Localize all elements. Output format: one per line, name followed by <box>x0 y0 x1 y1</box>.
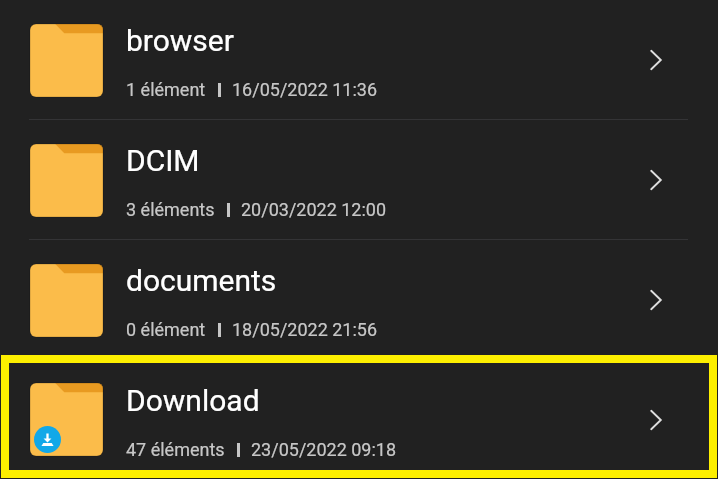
staticText: 3 éléments <box>126 199 215 220</box>
button[interactable]: browser <box>0 0 718 120</box>
staticText: documents <box>126 263 277 298</box>
staticText: Download <box>126 383 260 418</box>
staticText: 20/03/2022 12:00 <box>241 199 387 220</box>
staticText: 18/05/2022 21:56 <box>232 319 378 340</box>
button[interactable]: Open documents <box>639 283 673 317</box>
staticText: 1 élément <box>126 79 206 100</box>
staticText: browser <box>126 23 234 58</box>
button[interactable]: Download <box>0 360 718 479</box>
staticText: 47 éléments <box>126 439 225 460</box>
button[interactable]: documents <box>0 240 718 360</box>
staticText: DCIM <box>126 143 200 178</box>
staticText: 0 élément <box>126 319 206 340</box>
staticText: 16/05/2022 11:36 <box>232 79 378 100</box>
button[interactable]: DCIM <box>0 120 718 240</box>
staticText: 23/05/2022 09:18 <box>251 439 397 460</box>
button[interactable]: Open DCIM <box>639 163 673 197</box>
button[interactable]: Open Download <box>639 403 673 437</box>
button[interactable]: Open browser <box>639 43 673 77</box>
